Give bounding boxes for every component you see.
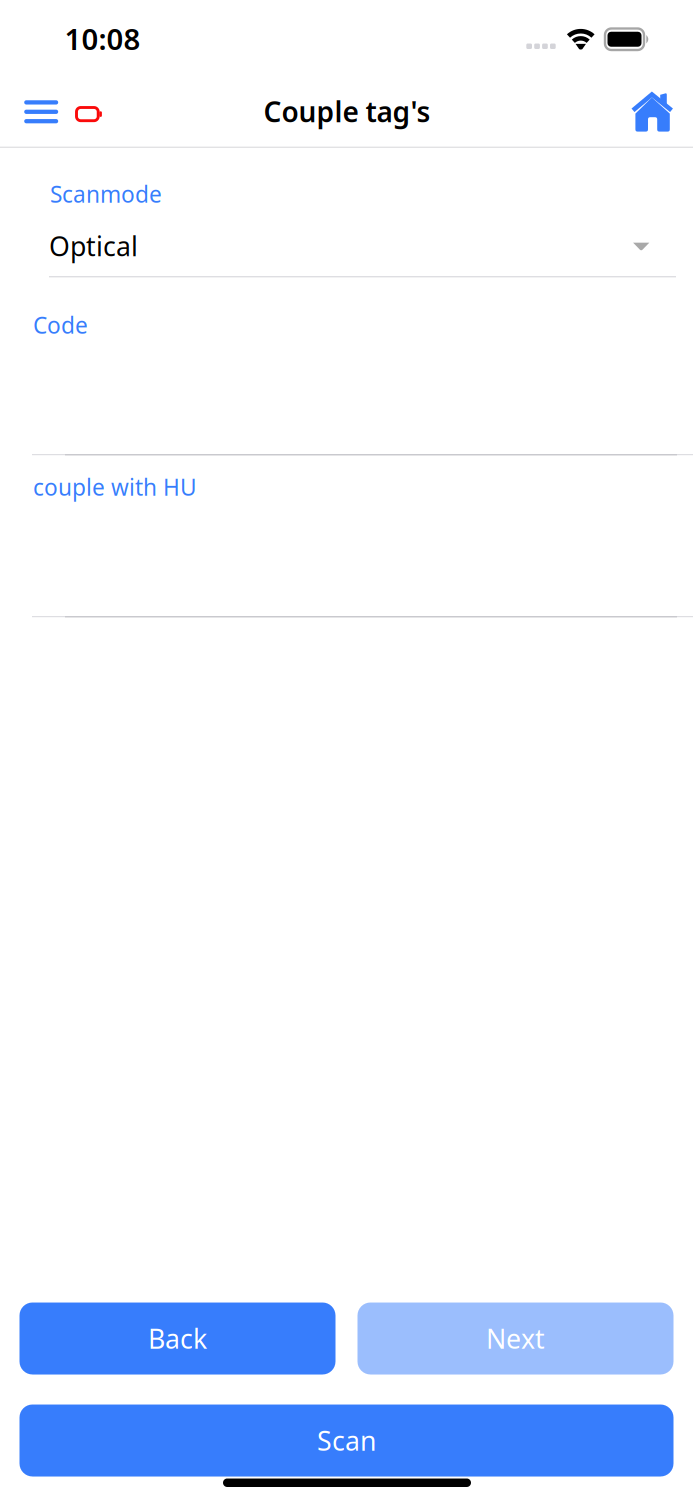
staticText: Scanmode	[50, 179, 162, 209]
staticText: Code	[33, 310, 88, 340]
staticText: Optical	[49, 228, 138, 264]
button[interactable]: Home	[0, 74, 693, 148]
button[interactable]: Scanmode	[0, 0, 693, 1500]
button[interactable]: Back	[19, 1302, 335, 1374]
button[interactable]: Menu	[0, 74, 693, 148]
staticText: Scan	[317, 1423, 376, 1458]
button[interactable]: Code	[0, 0, 693, 1500]
staticText: Next	[486, 1321, 545, 1356]
button[interactable]: Couple tag's	[0, 74, 693, 148]
staticText: Back	[148, 1321, 207, 1356]
staticText: 10:08	[64, 19, 140, 58]
button[interactable]: Battery status	[0, 74, 693, 148]
button[interactable]: Next	[357, 1302, 673, 1374]
button[interactable]: couple with HU	[0, 0, 693, 1500]
staticText: couple with HU	[33, 472, 197, 502]
staticText: Couple tag's	[263, 93, 430, 130]
button[interactable]: Scan	[19, 1404, 673, 1476]
